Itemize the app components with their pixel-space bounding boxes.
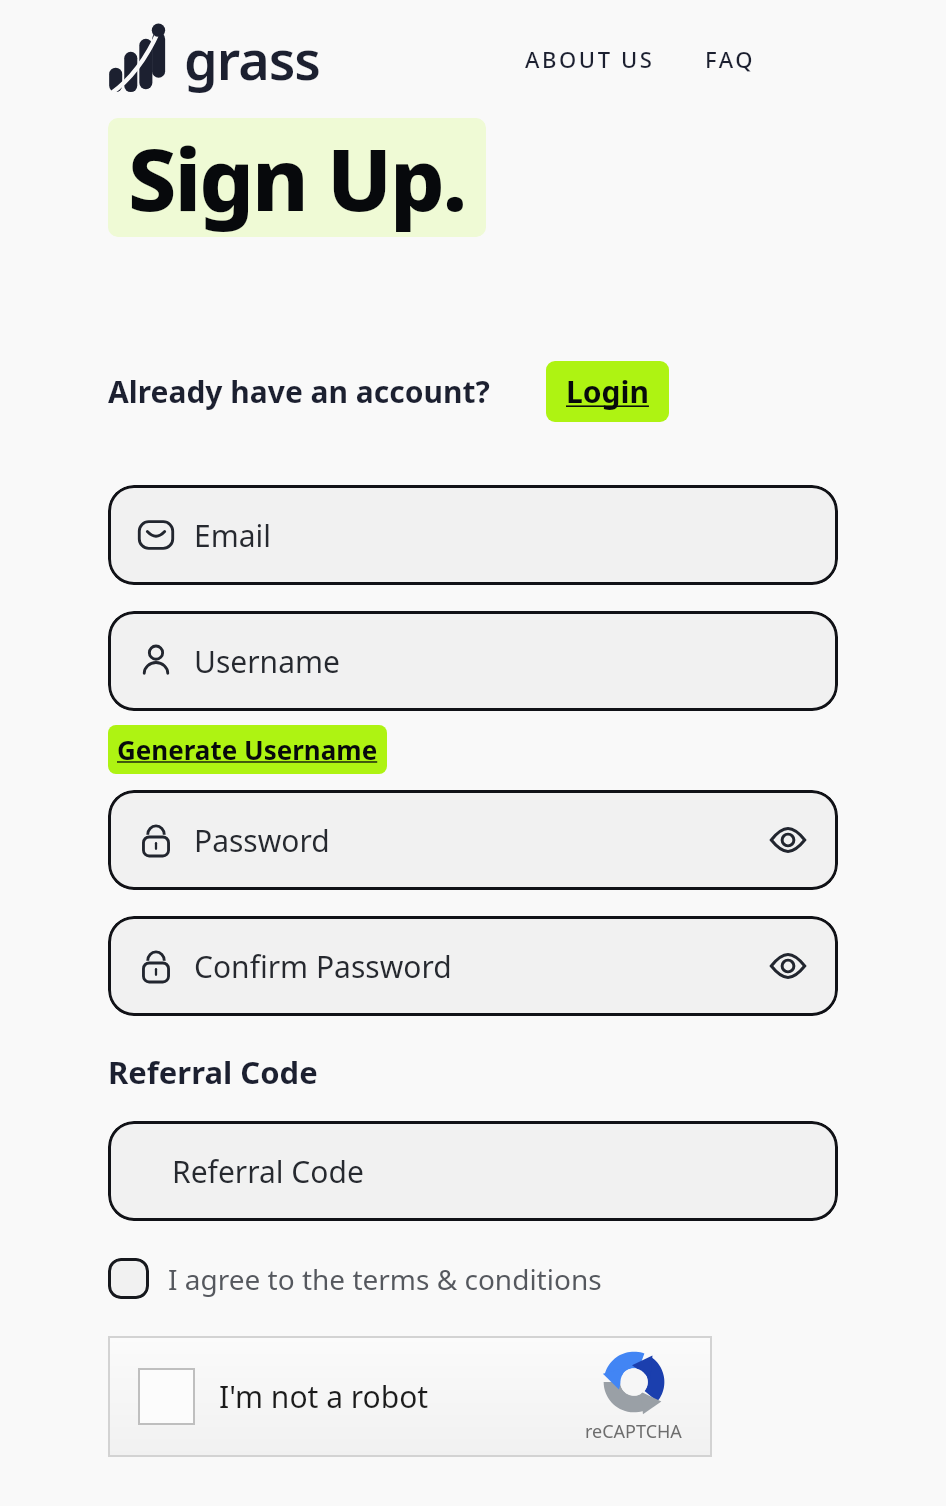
button[interactable]: Username	[108, 611, 838, 711]
staticText: reCAPTCHA	[585, 1419, 682, 1444]
staticText: ABOUT US	[525, 44, 655, 74]
staticText: Login	[566, 371, 649, 412]
button[interactable]: Grass home	[108, 22, 324, 96]
staticText: Password	[194, 820, 330, 861]
staticText: Sign Up.	[128, 119, 466, 236]
button[interactable]: I agree to the terms & conditions	[108, 1258, 602, 1299]
button[interactable]: I'm not a robot	[108, 1336, 712, 1457]
button[interactable]: FAQ	[697, 34, 764, 84]
staticText: I'm not a robot	[219, 1376, 429, 1417]
staticText: Email	[194, 515, 272, 556]
staticText: Generate Username	[117, 732, 378, 767]
staticText: grass	[184, 22, 320, 96]
staticText: Confirm Password	[194, 946, 452, 987]
staticText: FAQ	[705, 44, 756, 74]
button[interactable]: Referral Code	[108, 1121, 838, 1221]
button[interactable]: I'm not a robot	[138, 1368, 195, 1425]
staticText: Referral Code	[108, 1051, 318, 1093]
button[interactable]: Email	[108, 485, 838, 585]
button[interactable]: Show password	[766, 818, 810, 862]
staticText: Already have an account?	[108, 371, 490, 412]
staticText: Username	[194, 641, 340, 682]
button[interactable]: Password	[108, 790, 838, 890]
button[interactable]: ABOUT US	[517, 34, 663, 84]
button[interactable]: Confirm Password	[108, 916, 838, 1016]
button[interactable]: Generate Username	[108, 725, 387, 774]
staticText: Referral Code	[172, 1151, 364, 1192]
button[interactable]: Login	[546, 361, 669, 422]
staticText: I agree to the terms & conditions	[168, 1260, 602, 1298]
button[interactable]: Show password	[766, 944, 810, 988]
